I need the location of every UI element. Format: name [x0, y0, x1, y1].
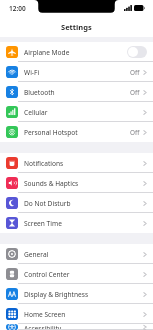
other: Open	[143, 89, 147, 96]
button[interactable]: Wi-Fi	[0, 62, 153, 82]
button[interactable]: Home Screen	[0, 304, 153, 324]
other: Open	[143, 251, 147, 258]
button[interactable]: Do Not Disturb	[0, 193, 153, 213]
button[interactable]: Notifications	[0, 153, 153, 173]
staticText: Sounds & Haptics	[24, 179, 143, 188]
button[interactable]: Bluetooth	[0, 82, 153, 102]
other: Open	[143, 291, 147, 298]
other: Open	[143, 180, 147, 187]
button[interactable]: Control Center	[0, 264, 153, 284]
other: Open	[143, 69, 147, 76]
button[interactable]: Accessibility	[0, 324, 153, 330]
staticText: 12:00	[9, 4, 26, 13]
staticText: Cellular	[24, 108, 143, 117]
other: Open	[143, 160, 147, 167]
staticText: General	[24, 250, 143, 259]
other: Open	[143, 324, 147, 330]
button[interactable]: General	[0, 244, 153, 264]
button[interactable]: Airplane Mode	[0, 42, 153, 62]
button[interactable]: Personal Hotspot	[0, 122, 153, 142]
button[interactable]: Sounds & Haptics	[0, 173, 153, 193]
staticText: Off	[130, 68, 140, 77]
button[interactable]: Display & Brightness	[0, 284, 153, 304]
staticText: Display & Brightness	[24, 290, 143, 299]
staticText: Airplane Mode	[24, 48, 127, 57]
other: Open	[143, 129, 147, 136]
staticText: Settings	[61, 22, 92, 32]
staticText: Accessibility	[24, 324, 143, 330]
staticText: Screen Time	[24, 219, 143, 228]
other: Open	[143, 271, 147, 278]
button[interactable]: Airplane Mode toggle, off	[127, 46, 147, 58]
other: Open	[143, 109, 147, 116]
staticText: Bluetooth	[24, 88, 130, 97]
staticText: Off	[130, 88, 140, 97]
staticText: Do Not Disturb	[24, 199, 143, 208]
button[interactable]: Screen Time	[0, 213, 153, 233]
staticText: Wi-Fi	[24, 68, 130, 77]
staticText: Home Screen	[24, 310, 143, 319]
button[interactable]: Cellular	[0, 102, 153, 122]
staticText: Personal Hotspot	[24, 128, 130, 137]
other: Open	[143, 200, 147, 207]
staticText: Notifications	[24, 159, 143, 168]
staticText: Off	[130, 128, 140, 137]
other: Open	[143, 311, 147, 318]
staticText: Control Center	[24, 270, 143, 279]
other: Open	[143, 220, 147, 227]
